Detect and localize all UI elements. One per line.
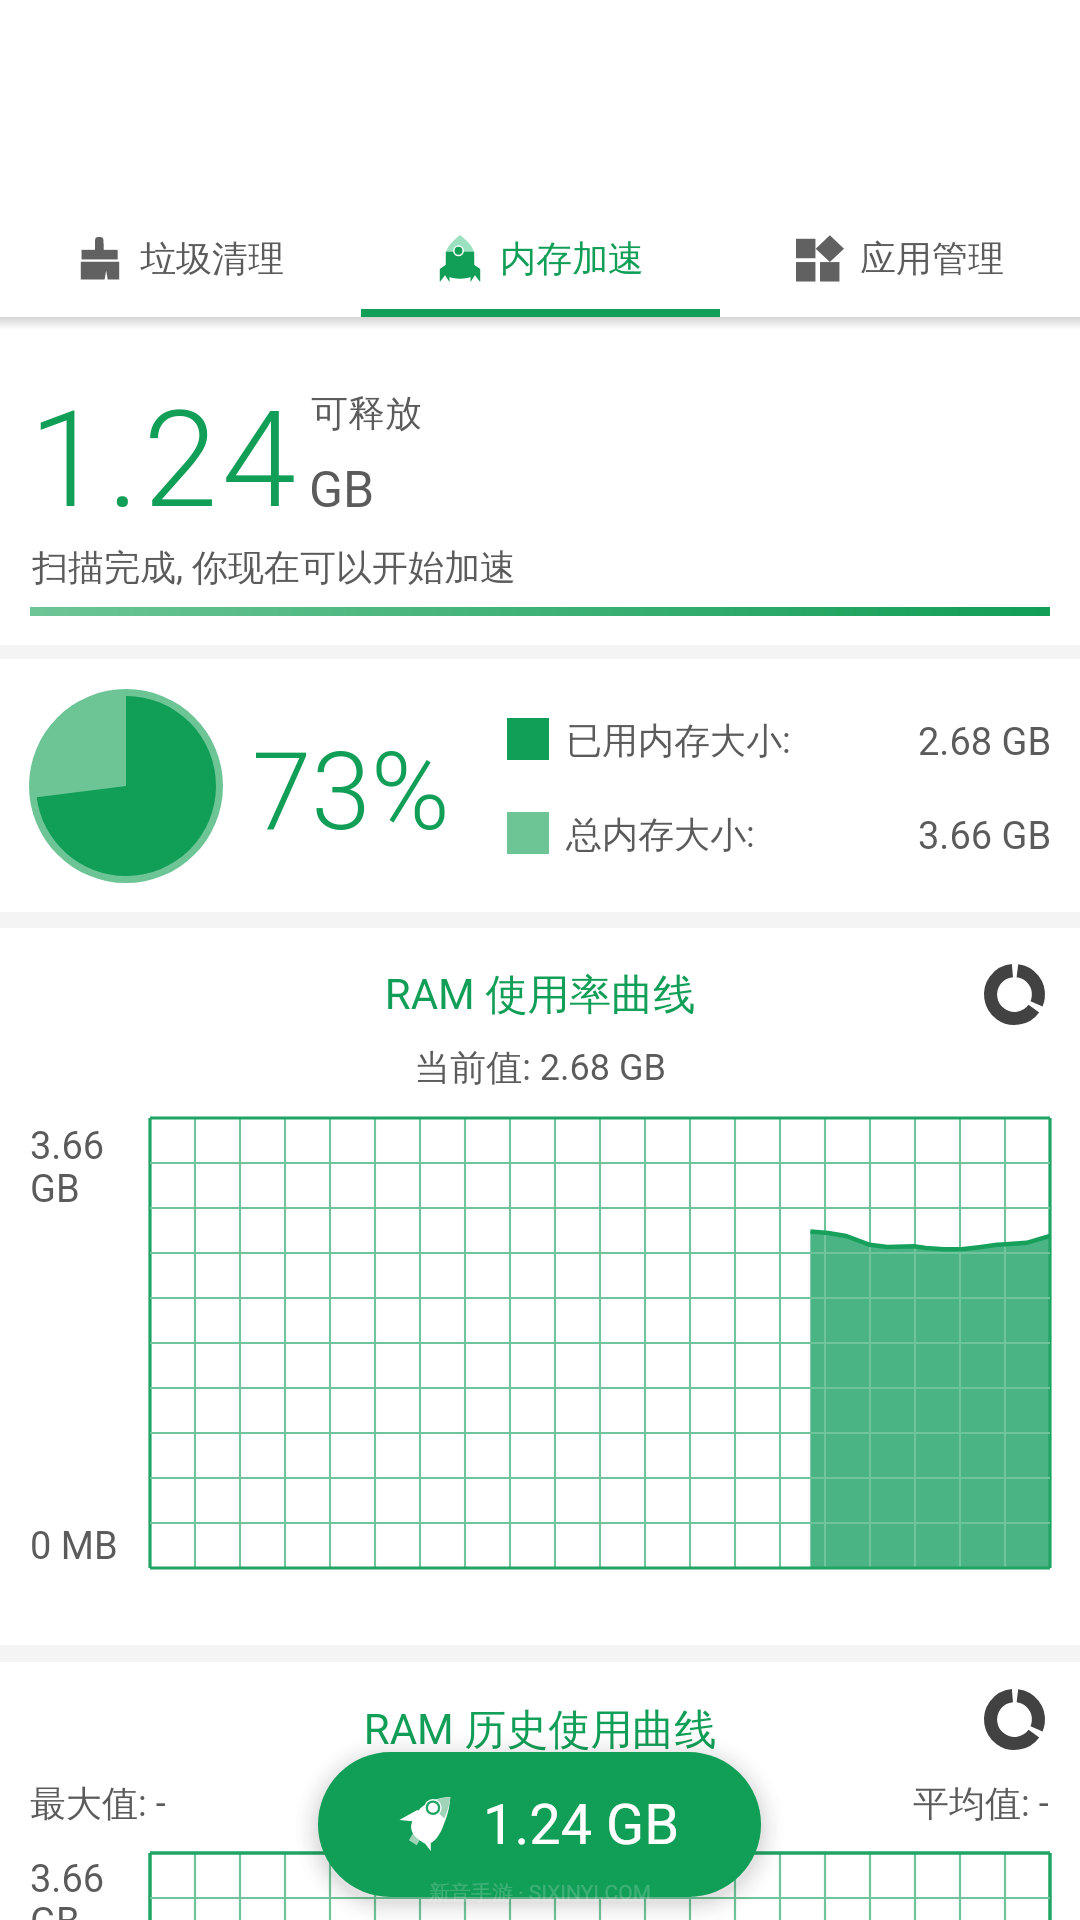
staticText: 可释放	[311, 390, 422, 437]
button[interactable]: 内存加速	[360, 180, 720, 317]
staticText: 应用管理	[860, 236, 1004, 281]
staticText: 平均值: -	[913, 1781, 1049, 1826]
staticText: 垃圾清理	[140, 236, 284, 281]
staticText: 内存加速	[500, 236, 644, 281]
button[interactable]: 垃圾清理	[0, 180, 360, 317]
staticText: 最大值: -	[30, 1781, 166, 1826]
staticText: 3.66 GB	[918, 814, 1052, 859]
button[interactable]: 1.24 GB	[318, 1752, 761, 1897]
staticText: 扫描完成, 你现在可以开始加速	[32, 545, 517, 590]
staticText: 73%	[252, 730, 450, 855]
staticText: 0 MB	[30, 1524, 118, 1569]
staticText: 总内存大小:	[566, 812, 755, 857]
staticText: 当前值: 2.68 GB	[0, 1045, 1080, 1090]
staticText: 1.24	[29, 382, 300, 539]
staticText: GB	[309, 461, 375, 520]
staticText: 3.66 GB	[30, 1857, 105, 1920]
button[interactable]: Refresh RAM usage	[976, 956, 1052, 1032]
staticText: 已用内存大小:	[566, 718, 791, 763]
staticText: 1.24 GB	[483, 1792, 680, 1858]
staticText: RAM 历史使用曲线	[0, 1704, 1080, 1757]
button[interactable]: Refresh RAM history	[976, 1681, 1052, 1757]
button[interactable]: 应用管理	[720, 180, 1080, 317]
staticText: 2.68 GB	[918, 720, 1052, 765]
staticText: 3.66 GB	[30, 1124, 105, 1211]
staticText: 新音手游 · SIXINYI.COM	[0, 1880, 1080, 1906]
staticText: RAM 使用率曲线	[0, 969, 1080, 1022]
